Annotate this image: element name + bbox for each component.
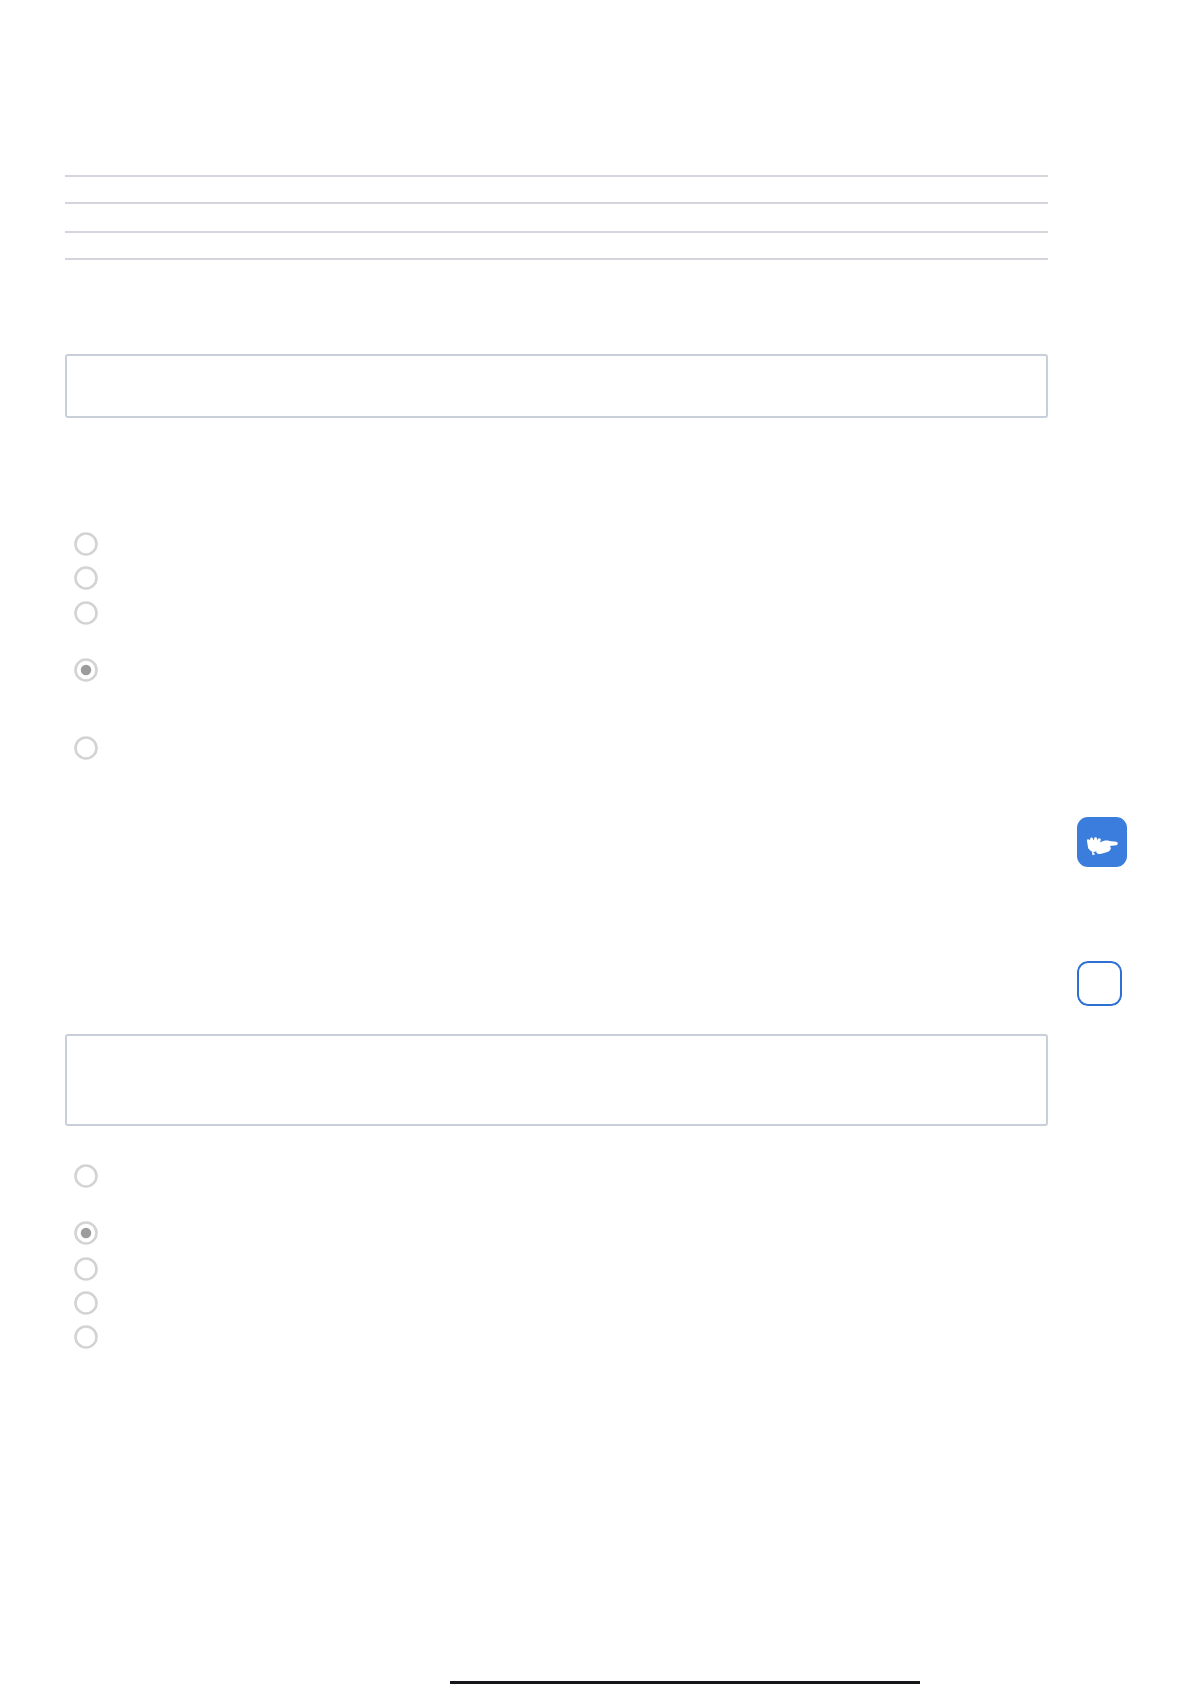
button[interactable] — [65, 354, 1048, 418]
button[interactable]: Choice 2 — [66, 1213, 106, 1253]
button[interactable]: Select — [1077, 961, 1122, 1006]
button[interactable] — [65, 1034, 1048, 1126]
button[interactable]: Option 1 — [66, 524, 106, 564]
button[interactable]: Option 2 — [66, 558, 106, 598]
button[interactable]: Option 4 — [66, 650, 106, 690]
button[interactable]: Choice 4 — [66, 1283, 106, 1323]
button[interactable]: Option 5 — [66, 728, 106, 768]
button[interactable]: Choice 5 — [66, 1317, 106, 1357]
button[interactable]: Choice 3 — [66, 1249, 106, 1289]
button[interactable]: Option 3 — [66, 593, 106, 633]
button[interactable]: Choice 1 — [66, 1156, 106, 1196]
button[interactable]: Sign language interpretation — [1077, 817, 1127, 867]
